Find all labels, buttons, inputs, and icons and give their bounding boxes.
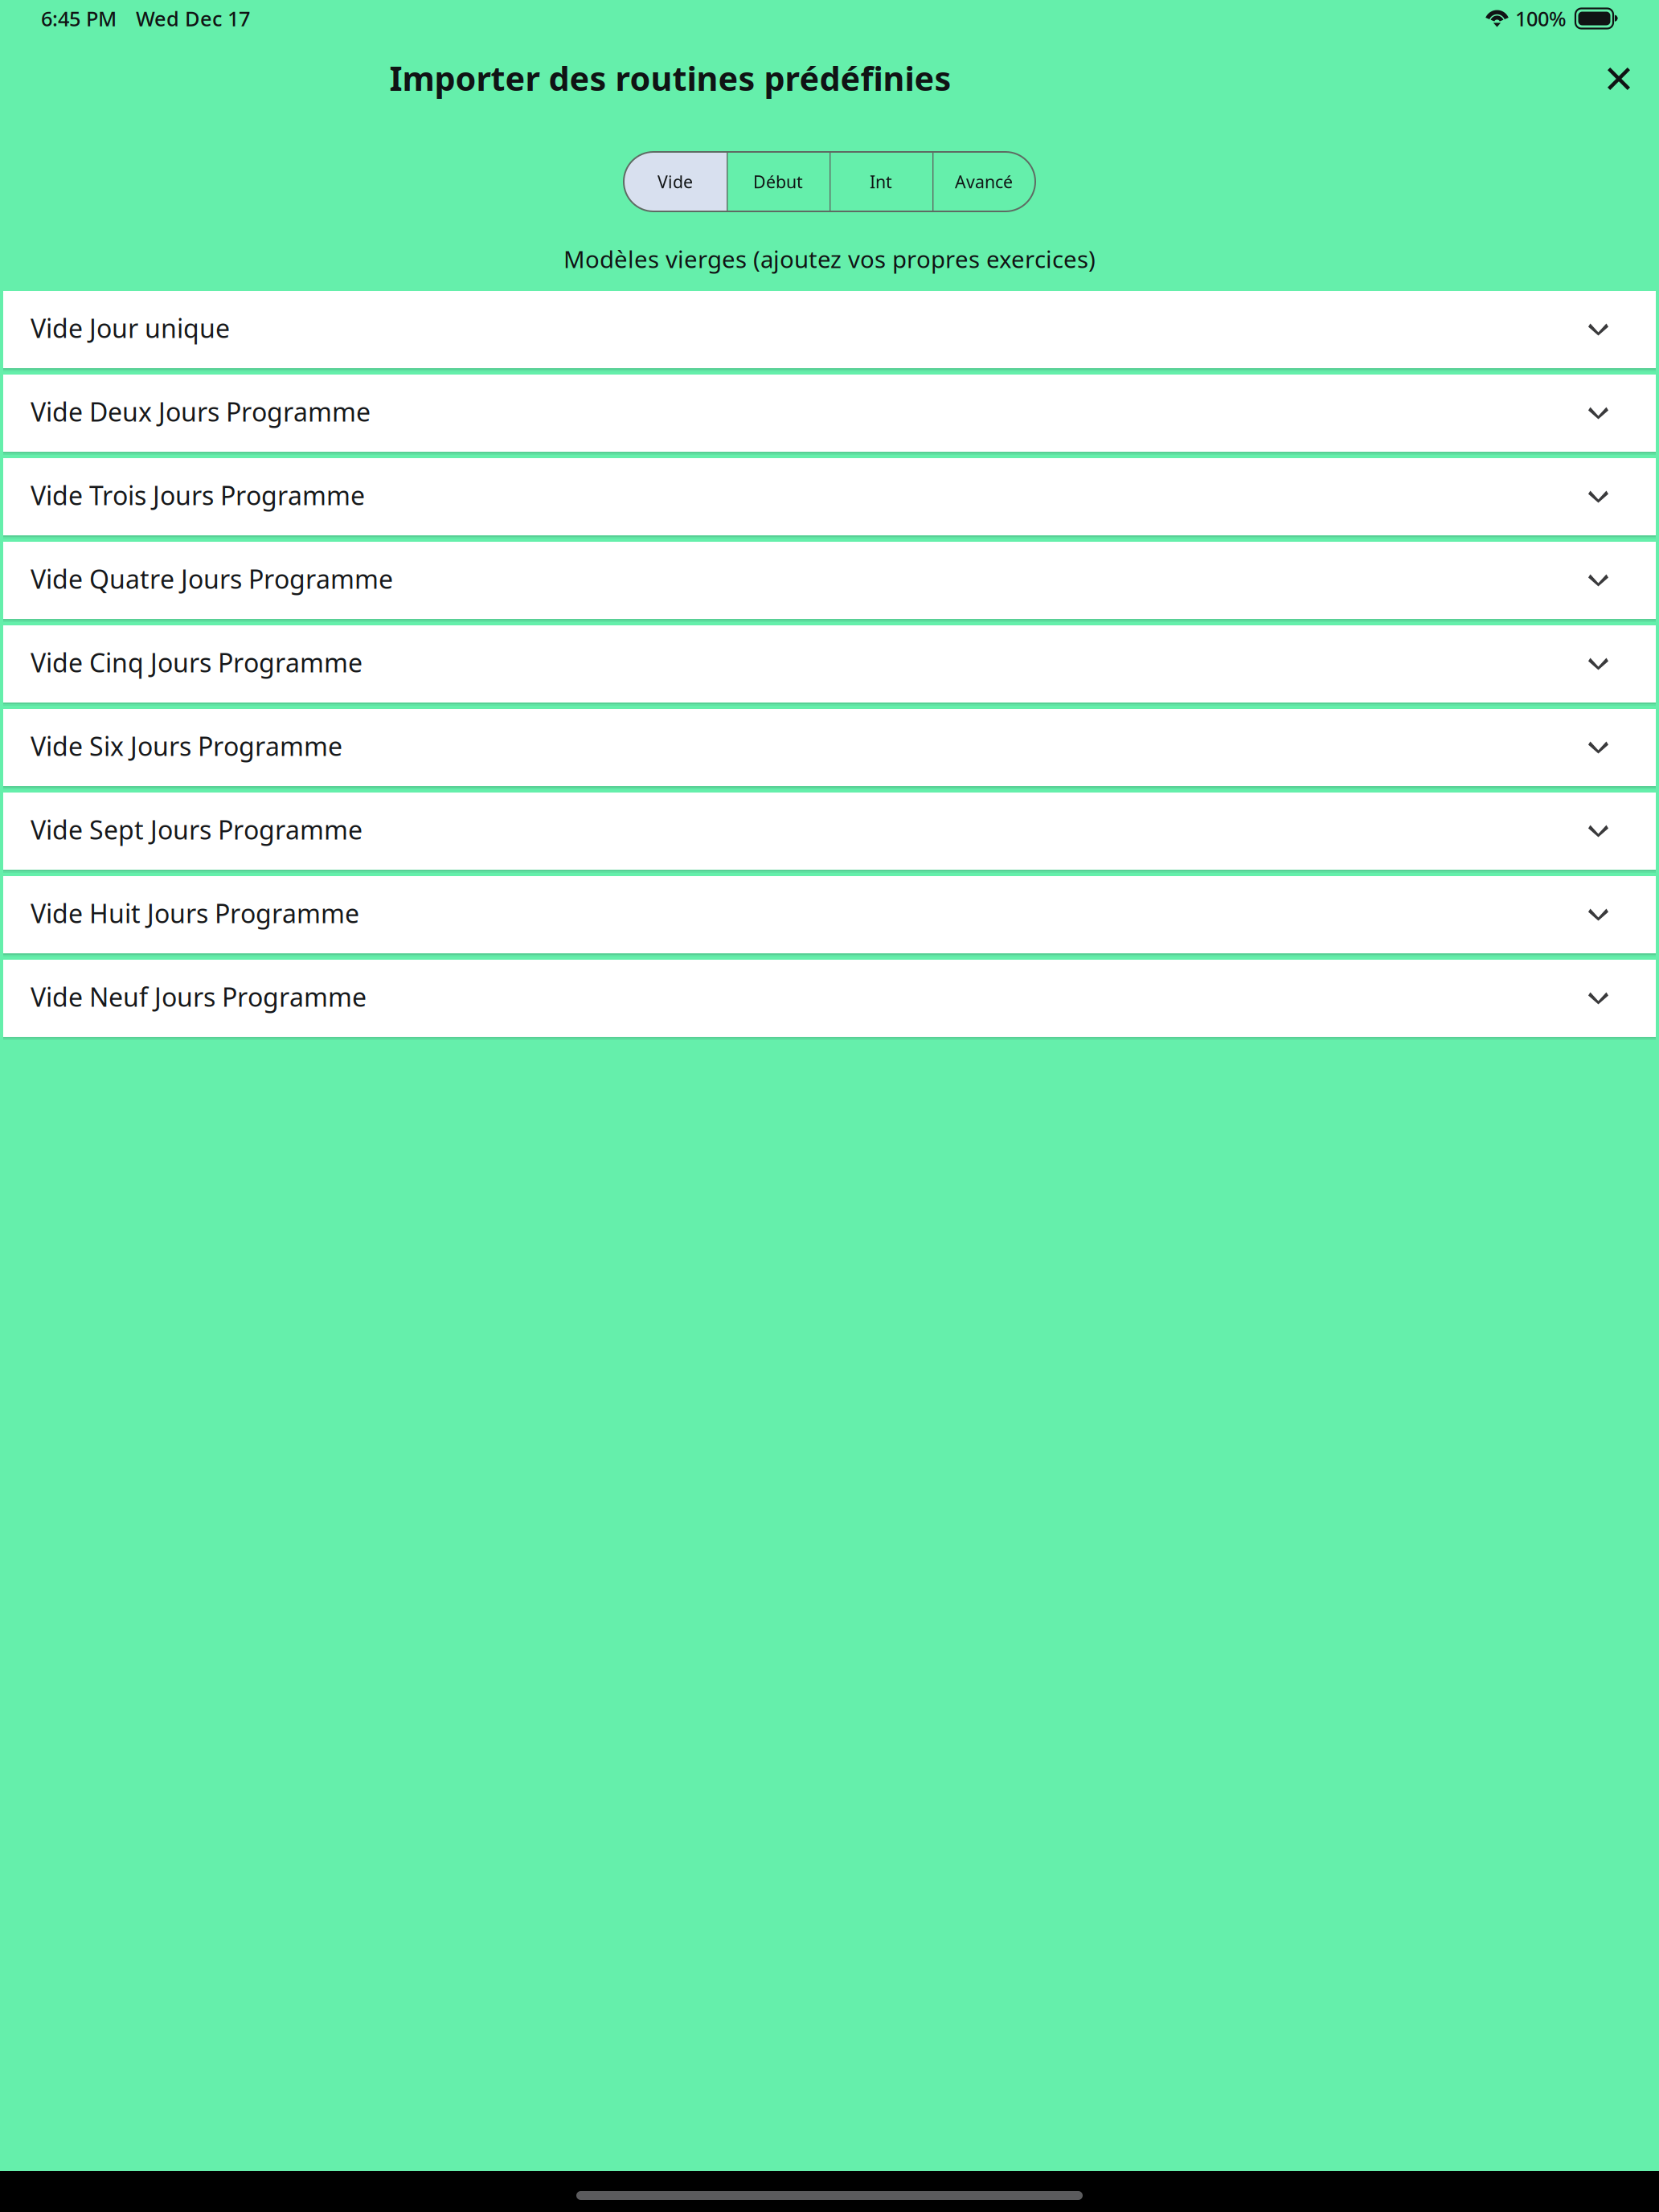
staticText: Vide Neuf Jours Programme	[31, 980, 367, 1014]
button[interactable]: Vide	[624, 152, 727, 211]
button[interactable]: Int	[829, 152, 932, 211]
staticText: Vide Sept Jours Programme	[31, 812, 363, 847]
button[interactable]: Vide Six Jours Programme	[3, 709, 1656, 789]
staticText: Wed Dec 17	[136, 5, 250, 32]
staticText: Vide Quatre Jours Programme	[31, 562, 393, 596]
button[interactable]: Vide Cinq Jours Programme	[3, 625, 1656, 706]
staticText: Début	[753, 170, 803, 193]
button[interactable]: Vide Trois Jours Programme	[3, 458, 1656, 539]
button[interactable]: Fermer	[1587, 47, 1651, 111]
button[interactable]: Vide Neuf Jours Programme	[3, 960, 1656, 1040]
staticText: Vide Huit Jours Programme	[31, 896, 359, 930]
staticText: Vide Trois Jours Programme	[31, 478, 365, 512]
staticText: 6:45 PM	[41, 5, 117, 32]
button[interactable]: Vide Jour unique	[3, 291, 1656, 371]
button[interactable]: Vide Quatre Jours Programme	[3, 542, 1656, 622]
staticText: Vide Six Jours Programme	[31, 729, 342, 763]
staticText: Importer des routines prédéfinies	[389, 56, 951, 100]
staticText: Avancé	[955, 170, 1013, 193]
staticText: 100%	[1515, 5, 1567, 32]
staticText: Int	[870, 170, 892, 193]
button[interactable]: Vide Sept Jours Programme	[3, 793, 1656, 873]
staticText: Modèles vierges (ajoutez vos propres exe…	[563, 243, 1096, 274]
button[interactable]: Début	[727, 152, 829, 211]
staticText: Vide Jour unique	[31, 311, 230, 345]
button[interactable]: Vide Deux Jours Programme	[3, 375, 1656, 455]
button[interactable]: Avancé	[932, 152, 1035, 211]
staticText: Vide Cinq Jours Programme	[31, 645, 363, 679]
staticText: Vide	[657, 170, 693, 193]
staticText: Vide Deux Jours Programme	[31, 394, 371, 429]
button[interactable]: Vide Huit Jours Programme	[3, 876, 1656, 956]
